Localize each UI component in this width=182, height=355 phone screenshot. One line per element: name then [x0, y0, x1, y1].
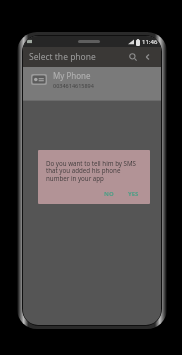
- staticText: YES: [128, 190, 139, 198]
- button[interactable]: My Phone: [23, 67, 161, 91]
- button[interactable]: Search: [125, 49, 141, 65]
- button[interactable]: NO: [99, 188, 119, 200]
- button[interactable]: YES: [123, 188, 144, 200]
- staticText: 11:46: [142, 38, 158, 46]
- staticText: Select the phone: [29, 51, 125, 63]
- button[interactable]: More options: [141, 50, 155, 64]
- staticText: Do you want to tell him by SMS that you …: [46, 159, 144, 183]
- staticText: My Phone: [53, 70, 91, 81]
- staticText: NO: [104, 190, 114, 198]
- staticText: 0034614615894: [53, 82, 94, 89]
